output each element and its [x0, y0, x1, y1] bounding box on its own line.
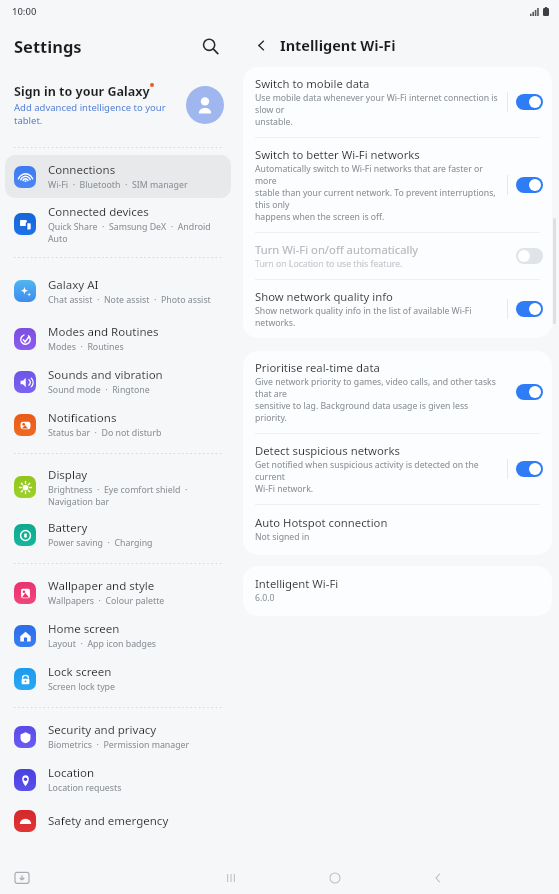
button[interactable]: Home	[320, 863, 350, 893]
button[interactable]: Turn Wi-Fi on/off automatically	[516, 248, 543, 264]
button[interactable]: Switch to better Wi-Fi networks	[516, 177, 543, 193]
button[interactable]: Switch to mobile data	[516, 94, 543, 110]
staticText: Lock screen	[48, 664, 112, 680]
staticText: Chat assist · Note assist · Photo assist	[48, 294, 211, 306]
button[interactable]: Location	[5, 758, 231, 801]
button[interactable]: Detect suspicious networks	[516, 461, 543, 477]
staticText: Wallpapers · Colour palette	[48, 595, 165, 607]
staticText: Settings	[14, 35, 82, 57]
staticText: Sound mode · Ringtone	[48, 384, 150, 396]
staticText: Sign in to your Galaxy	[14, 83, 150, 100]
staticText: Not signed in	[255, 531, 310, 543]
button[interactable]: Sign in to your Galaxy	[0, 70, 236, 140]
button[interactable]: Show network quality info	[243, 280, 552, 338]
staticText: Prioritise real-time data	[255, 360, 380, 375]
button[interactable]: Home screen	[5, 614, 231, 657]
button[interactable]: Modes and Routines	[5, 317, 231, 360]
staticText: Safety and emergency	[48, 813, 169, 829]
button[interactable]: Back	[248, 32, 274, 58]
staticText: Screen lock type	[48, 681, 115, 693]
staticText: Automatically switch to Wi-Fi networks t…	[255, 163, 501, 223]
staticText: Layout · App icon badges	[48, 638, 157, 650]
staticText: Connected devices	[48, 204, 149, 220]
staticText: Security and privacy	[48, 722, 157, 738]
button[interactable]: Sounds and vibration	[5, 360, 231, 403]
button[interactable]: Lock screen	[5, 657, 231, 700]
staticText: Status bar · Do not disturb	[48, 427, 162, 439]
staticText: Biometrics · Permission manager	[48, 739, 190, 751]
staticText: Switch to mobile data	[255, 76, 370, 91]
button[interactable]: Galaxy AI	[5, 265, 231, 317]
staticText: Power saving · Charging	[48, 537, 153, 549]
button[interactable]: Safety and emergency	[5, 801, 231, 841]
staticText: 6.0.0	[255, 592, 275, 604]
button[interactable]: Security and privacy	[5, 715, 231, 758]
button[interactable]: Auto Hotspot connection	[243, 505, 552, 555]
staticText: Wi-Fi · Bluetooth · SIM manager	[48, 179, 188, 191]
staticText: Display	[48, 467, 88, 483]
staticText: Quick Share · Samsung DeX · Android Auto	[48, 221, 225, 245]
staticText: Show network quality info	[255, 289, 393, 304]
button[interactable]: Wallpaper and style	[5, 571, 231, 614]
button[interactable]: Prioritise real-time data	[516, 384, 543, 400]
button[interactable]: Show network quality info	[516, 301, 543, 317]
button[interactable]: Recents	[216, 863, 246, 893]
staticText: Add advanced intelligence to your tablet…	[14, 101, 166, 127]
staticText: Intelligent Wi-Fi	[280, 35, 396, 55]
staticText: Wallpaper and style	[48, 578, 155, 594]
button[interactable]: Switch to better Wi-Fi networks	[243, 138, 552, 233]
staticText: Modes and Routines	[48, 324, 159, 340]
button[interactable]: Turn Wi-Fi on/off automatically	[243, 233, 552, 280]
button[interactable]: Battery	[5, 513, 231, 556]
staticText: Location requests	[48, 782, 122, 794]
staticText: Battery	[48, 520, 88, 536]
staticText: Intelligent Wi-Fi	[255, 576, 339, 591]
button[interactable]: Back	[423, 863, 453, 893]
staticText: Brightness · Eye comfort shield · Naviga…	[48, 484, 225, 508]
staticText: Get notified when suspicious activity is…	[255, 459, 501, 495]
staticText: Detect suspicious networks	[255, 443, 400, 458]
staticText: Show network quality info in the list of…	[255, 305, 501, 329]
button[interactable]: Search	[194, 30, 226, 62]
staticText: Modes · Routines	[48, 341, 124, 353]
staticText: Turn on Location to use this feature.	[255, 258, 403, 270]
staticText: Location	[48, 765, 95, 781]
staticText: Home screen	[48, 621, 120, 637]
staticText: Turn Wi-Fi on/off automatically	[255, 242, 419, 257]
staticText: Galaxy AI	[48, 277, 99, 293]
button[interactable]: Connected devices	[5, 198, 231, 250]
button[interactable]: Connections	[5, 155, 231, 198]
staticText: Give network priority to games, video ca…	[255, 376, 501, 424]
staticText: Switch to better Wi-Fi networks	[255, 147, 420, 162]
button[interactable]: Prioritise real-time data	[243, 351, 552, 434]
button[interactable]: Intelligent Wi-Fi	[243, 566, 552, 616]
staticText: Connections	[48, 162, 116, 178]
staticText: 10:00	[12, 5, 37, 18]
staticText: Auto Hotspot connection	[255, 515, 388, 530]
button[interactable]: Display	[5, 461, 231, 513]
button[interactable]: Detect suspicious networks	[243, 434, 552, 505]
staticText: Use mobile data whenever your Wi-Fi inte…	[255, 92, 501, 128]
staticText: Sounds and vibration	[48, 367, 163, 383]
button[interactable]: Switch to mobile data	[243, 67, 552, 138]
staticText: Notifications	[48, 410, 117, 426]
button[interactable]: Screenshot	[12, 868, 32, 888]
button[interactable]: Notifications	[5, 403, 231, 446]
